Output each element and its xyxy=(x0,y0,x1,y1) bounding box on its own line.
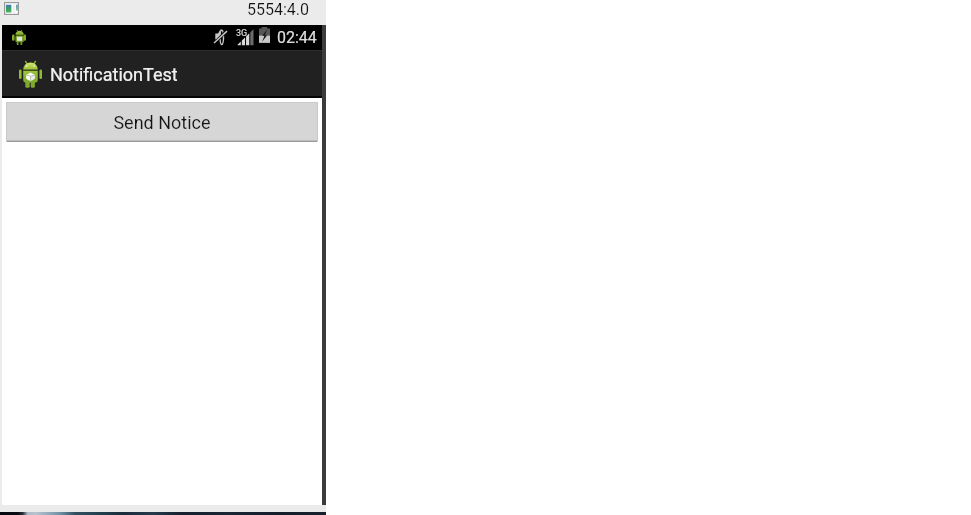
staticText: NotificationTest xyxy=(50,64,178,85)
staticText: Send Notice xyxy=(113,112,211,133)
staticText: 3G xyxy=(236,28,248,39)
button[interactable]: NotificationTest app icon xyxy=(2,51,182,96)
other: NotificationTest app icon xyxy=(19,61,42,88)
button[interactable]: Send Notice xyxy=(6,102,318,142)
staticText: 5554:4.0 xyxy=(247,0,310,19)
staticText: 02:44 xyxy=(277,28,317,47)
